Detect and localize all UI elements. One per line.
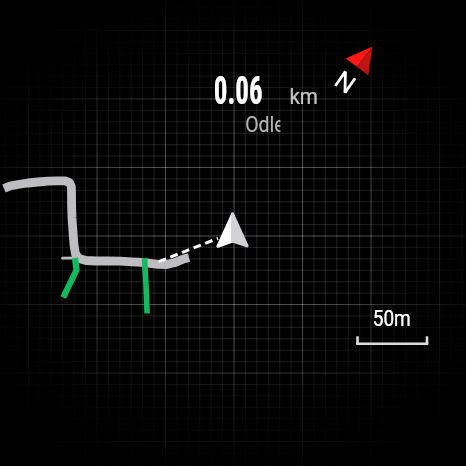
button[interactable]: Map, tap to open controls bbox=[0, 0, 466, 466]
